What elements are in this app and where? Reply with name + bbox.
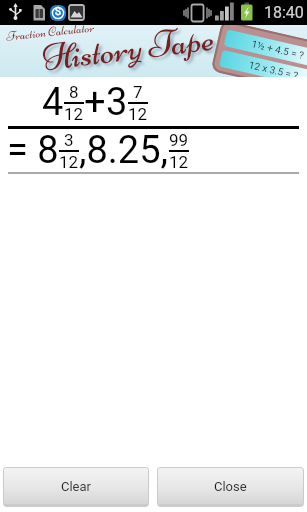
button[interactable]: Close bbox=[157, 467, 304, 505]
staticText: 99 bbox=[169, 130, 189, 150]
staticText: 12 bbox=[64, 104, 84, 124]
staticText: S bbox=[55, 6, 61, 18]
staticText: 7 bbox=[133, 82, 143, 102]
staticText: ,8.25, bbox=[79, 128, 169, 173]
staticText: 18:40 bbox=[264, 3, 304, 22]
button[interactable]: Clear bbox=[3, 467, 149, 505]
staticText: = 8 bbox=[7, 128, 59, 173]
staticText: 4 bbox=[42, 80, 64, 125]
staticText: + bbox=[84, 80, 106, 125]
staticText: 8 bbox=[69, 82, 79, 102]
staticText: 12 bbox=[128, 104, 148, 124]
staticText: 12 bbox=[169, 152, 189, 172]
staticText: Close bbox=[214, 479, 247, 494]
staticText: Clear bbox=[61, 479, 91, 494]
staticText: 12 x 3.5 = ? bbox=[248, 59, 300, 77]
staticText: 3 bbox=[64, 130, 74, 150]
staticText: 12 bbox=[59, 152, 79, 172]
staticText: 1½ + 4.5 = ? bbox=[250, 38, 306, 62]
staticText: Fraction Calculator bbox=[5, 25, 96, 45]
staticText: History Tape bbox=[40, 25, 217, 77]
staticText: 3 bbox=[106, 80, 128, 125]
